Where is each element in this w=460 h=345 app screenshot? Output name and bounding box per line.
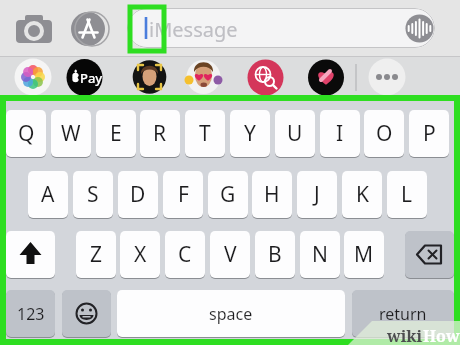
button[interactable] — [132, 59, 168, 95]
staticText: I — [336, 119, 344, 148]
staticText: C — [178, 240, 192, 269]
button[interactable] — [307, 59, 345, 97]
button[interactable] — [127, 8, 435, 48]
button[interactable]: L — [387, 171, 427, 218]
button[interactable] — [186, 59, 222, 95]
button[interactable]: P — [409, 110, 449, 157]
staticText: W — [61, 119, 81, 148]
staticText: 123 — [17, 303, 45, 325]
button[interactable] — [404, 13, 436, 45]
staticText: L — [401, 180, 413, 209]
staticText: How — [423, 325, 460, 345]
button[interactable]: X — [120, 231, 160, 278]
button[interactable]: space — [117, 290, 345, 337]
button[interactable]: Z — [76, 231, 116, 278]
staticText: X — [134, 240, 147, 269]
button[interactable]: J — [297, 171, 337, 218]
staticText: K — [356, 180, 369, 209]
button[interactable] — [14, 12, 54, 46]
button[interactable] — [70, 10, 108, 48]
button[interactable]: H — [252, 171, 292, 218]
staticText: wiki — [387, 325, 423, 345]
staticText: D — [130, 180, 146, 209]
button[interactable]: K — [342, 171, 382, 218]
staticText: H — [264, 180, 280, 209]
staticText: Y — [244, 119, 256, 148]
staticText: J — [314, 180, 320, 209]
button[interactable]: U — [275, 110, 315, 157]
staticText: S — [87, 180, 99, 209]
staticText: Pay — [80, 69, 103, 87]
button[interactable]: return — [352, 290, 454, 337]
button[interactable]: G — [208, 171, 248, 218]
button[interactable]: I — [320, 110, 360, 157]
staticText: E — [110, 119, 122, 148]
button[interactable]: D — [118, 171, 158, 218]
button[interactable]: Y — [230, 110, 270, 157]
staticText: space — [209, 303, 253, 325]
button[interactable]: R — [140, 110, 180, 157]
button[interactable]: O — [364, 110, 404, 157]
staticText: iMessage — [149, 16, 238, 43]
staticText: P — [423, 119, 436, 148]
button[interactable] — [247, 59, 284, 96]
staticText: U — [287, 119, 303, 148]
staticText: R — [153, 119, 167, 148]
button[interactable]: T — [185, 110, 225, 157]
button[interactable]: M — [344, 231, 384, 278]
staticText: Z — [90, 240, 103, 269]
staticText: A — [41, 180, 55, 209]
button[interactable] — [405, 231, 454, 278]
button[interactable]: C — [165, 231, 205, 278]
button[interactable]: B — [255, 231, 295, 278]
button[interactable]: N — [300, 231, 340, 278]
button[interactable] — [66, 58, 104, 96]
button[interactable]: E — [96, 110, 136, 157]
button[interactable]: F — [163, 171, 203, 218]
button[interactable] — [6, 231, 55, 278]
staticText: return — [379, 303, 427, 325]
staticText: Q — [18, 119, 35, 148]
button[interactable]: W — [51, 110, 91, 157]
staticText: B — [268, 240, 282, 269]
button[interactable]: V — [210, 231, 250, 278]
button[interactable]: 123 — [6, 290, 55, 337]
staticText: V — [224, 240, 237, 269]
button[interactable] — [14, 58, 52, 96]
staticText: M — [354, 240, 374, 269]
staticText: N — [312, 240, 328, 269]
staticText: F — [178, 180, 189, 209]
button[interactable]: S — [73, 171, 113, 218]
staticText: T — [199, 119, 211, 148]
staticText: O — [376, 119, 393, 148]
button[interactable] — [368, 58, 406, 96]
staticText: G — [220, 180, 236, 209]
button[interactable] — [62, 290, 111, 337]
button[interactable]: Q — [6, 110, 46, 157]
button[interactable]: A — [28, 171, 68, 218]
